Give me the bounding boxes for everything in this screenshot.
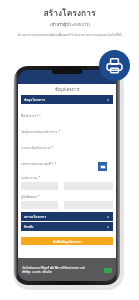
staticText: ข้อมูลโครงการ [24, 97, 45, 102]
staticText: ท่านสามารถกรอกแบบฟอร์มเพื่อขอสร้างโครงกา… [17, 32, 122, 37]
button[interactable]: Upload document [98, 162, 107, 171]
button[interactable]: Accept cookies [104, 268, 112, 273]
staticText: ข้อมูลโครงการ [55, 87, 80, 93]
staticText: งบประมาณ * [21, 175, 41, 180]
staticText: บันทึกข้อมูลโครงการ [53, 239, 82, 244]
button[interactable]: สถานะโครงการ [24, 212, 110, 221]
staticText: ที่ดีที่สุด ยอมรับ เงื่อนไข [22, 270, 52, 274]
staticText: วัตถุประสงค์ของโครงการ * [21, 129, 60, 134]
button[interactable]: ข้อมูลโครงการ [24, 95, 110, 104]
staticText: สถานะโครงการ [24, 214, 47, 219]
staticText: จังหวัด [24, 224, 34, 229]
button[interactable]: Project form [99, 50, 130, 81]
staticText: เอกสารประกอบ ชุดที่ 1 * [21, 161, 57, 166]
button[interactable]: จังหวัด [24, 222, 110, 231]
staticText: ผู้รับผิดชอบ * [21, 194, 40, 199]
staticText: สร้างโครงการ [43, 6, 96, 20]
staticText: (สำหรับผู้ประกอบการ) [50, 21, 90, 28]
staticText: รายละเอียดโครงการ * [21, 145, 54, 150]
button[interactable]: บันทึกข้อมูลโครงการ [21, 237, 113, 245]
staticText: ชื่อโครงการ * [21, 113, 41, 118]
staticText: เว็บไซต์ของเราใช้คุกกี้ เพื่อให้ท่านได้ร… [22, 266, 85, 270]
